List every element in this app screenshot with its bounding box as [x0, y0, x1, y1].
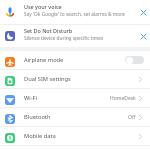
staticText: Airplane mode [24, 56, 64, 64]
button[interactable]: Dismiss set do not disturb [136, 25, 150, 47]
staticText: Say 'Ok Google' to search, set alarms & … [24, 11, 125, 18]
staticText: HomeDesk [110, 95, 136, 102]
staticText: Use your voice [24, 3, 62, 10]
button[interactable]: Dismiss use your voice [136, 0, 150, 24]
button[interactable]: Mobile data [0, 127, 150, 145]
button[interactable]: Set Do Not Disturb [0, 25, 150, 47]
button[interactable]: Use your voice [0, 0, 150, 24]
button[interactable]: Airplane mode toggle [125, 56, 144, 64]
button[interactable]: Wi-Fi [0, 89, 150, 107]
button[interactable]: Dual SIM settings [0, 70, 150, 88]
button[interactable]: Airplane mode [0, 51, 150, 69]
staticText: Dual SIM settings [24, 75, 71, 83]
staticText: Set Do Not Disturb [24, 27, 73, 34]
staticText: Mobile data [24, 132, 56, 140]
button[interactable]: Bluetooth [0, 108, 150, 126]
staticText: Bluetooth [24, 113, 51, 121]
staticText: Wi-Fi [24, 94, 38, 102]
staticText: Off [128, 114, 136, 121]
staticText: Silence device during specific times [24, 35, 104, 42]
